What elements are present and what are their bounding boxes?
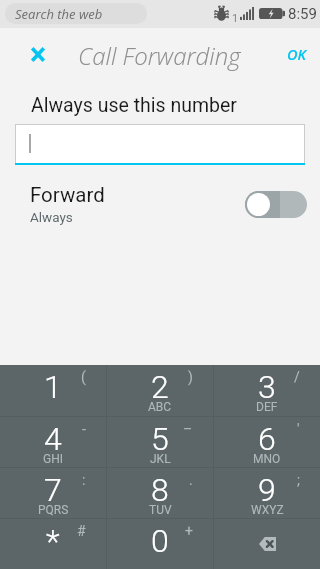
staticText: )	[188, 369, 193, 385]
button[interactable]: Backspace	[214, 519, 320, 569]
staticText: Always	[30, 209, 73, 225]
staticText: ABC	[148, 400, 172, 414]
staticText: PQRS	[38, 503, 69, 517]
staticText: 6	[258, 420, 276, 458]
staticText: 5	[151, 420, 169, 458]
staticText: 9	[258, 471, 276, 509]
button[interactable]: 8	[107, 468, 213, 518]
staticText: TUV	[149, 503, 172, 517]
staticText: '	[297, 421, 300, 437]
button[interactable]: 6	[214, 417, 320, 467]
button[interactable]: 2	[107, 365, 213, 416]
staticText: 8:59	[288, 5, 317, 23]
button[interactable]: *	[0, 519, 106, 569]
staticText: 7	[44, 471, 62, 509]
staticText: MNO	[253, 452, 281, 466]
staticText: 3	[258, 368, 276, 406]
staticText: *	[46, 522, 60, 560]
staticText: /	[294, 369, 300, 385]
button[interactable]: 9	[214, 468, 320, 518]
button[interactable]: Forward	[0, 180, 320, 228]
staticText: 1	[232, 12, 239, 25]
button[interactable]: 0	[107, 519, 213, 569]
staticText: Call Forwarding	[78, 39, 241, 72]
staticText: JKL	[150, 452, 171, 466]
staticText: WXYZ	[251, 503, 284, 517]
staticText: ;	[297, 472, 300, 488]
staticText: .	[189, 472, 193, 488]
button[interactable]: Search the web	[5, 3, 147, 24]
staticText: Search the web	[15, 5, 103, 23]
staticText: 8	[151, 471, 169, 509]
staticText: Forward	[30, 183, 105, 207]
button[interactable]	[15, 124, 305, 165]
button[interactable]: 5	[107, 417, 213, 467]
staticText: 1	[44, 368, 62, 406]
staticText: DEF	[256, 400, 278, 414]
staticText: +	[185, 523, 193, 539]
staticText: 4	[44, 420, 62, 458]
button[interactable]: 4	[0, 417, 106, 467]
staticText: Always use this number	[31, 94, 237, 117]
button[interactable]: 1	[0, 365, 106, 416]
staticText: -	[82, 421, 86, 437]
staticText: OK	[287, 45, 307, 65]
button[interactable]: OK	[287, 45, 307, 65]
staticText: GHI	[43, 452, 63, 466]
staticText: :	[82, 472, 86, 488]
staticText: #	[77, 523, 86, 539]
button[interactable]: 7	[0, 468, 106, 518]
staticText: 0	[151, 522, 169, 560]
other: Backspace	[259, 537, 276, 551]
button[interactable]: Close	[22, 38, 54, 70]
staticText: –	[183, 421, 193, 437]
staticText: (	[81, 369, 86, 385]
button[interactable]: 3	[214, 365, 320, 416]
staticText: 2	[151, 368, 169, 406]
